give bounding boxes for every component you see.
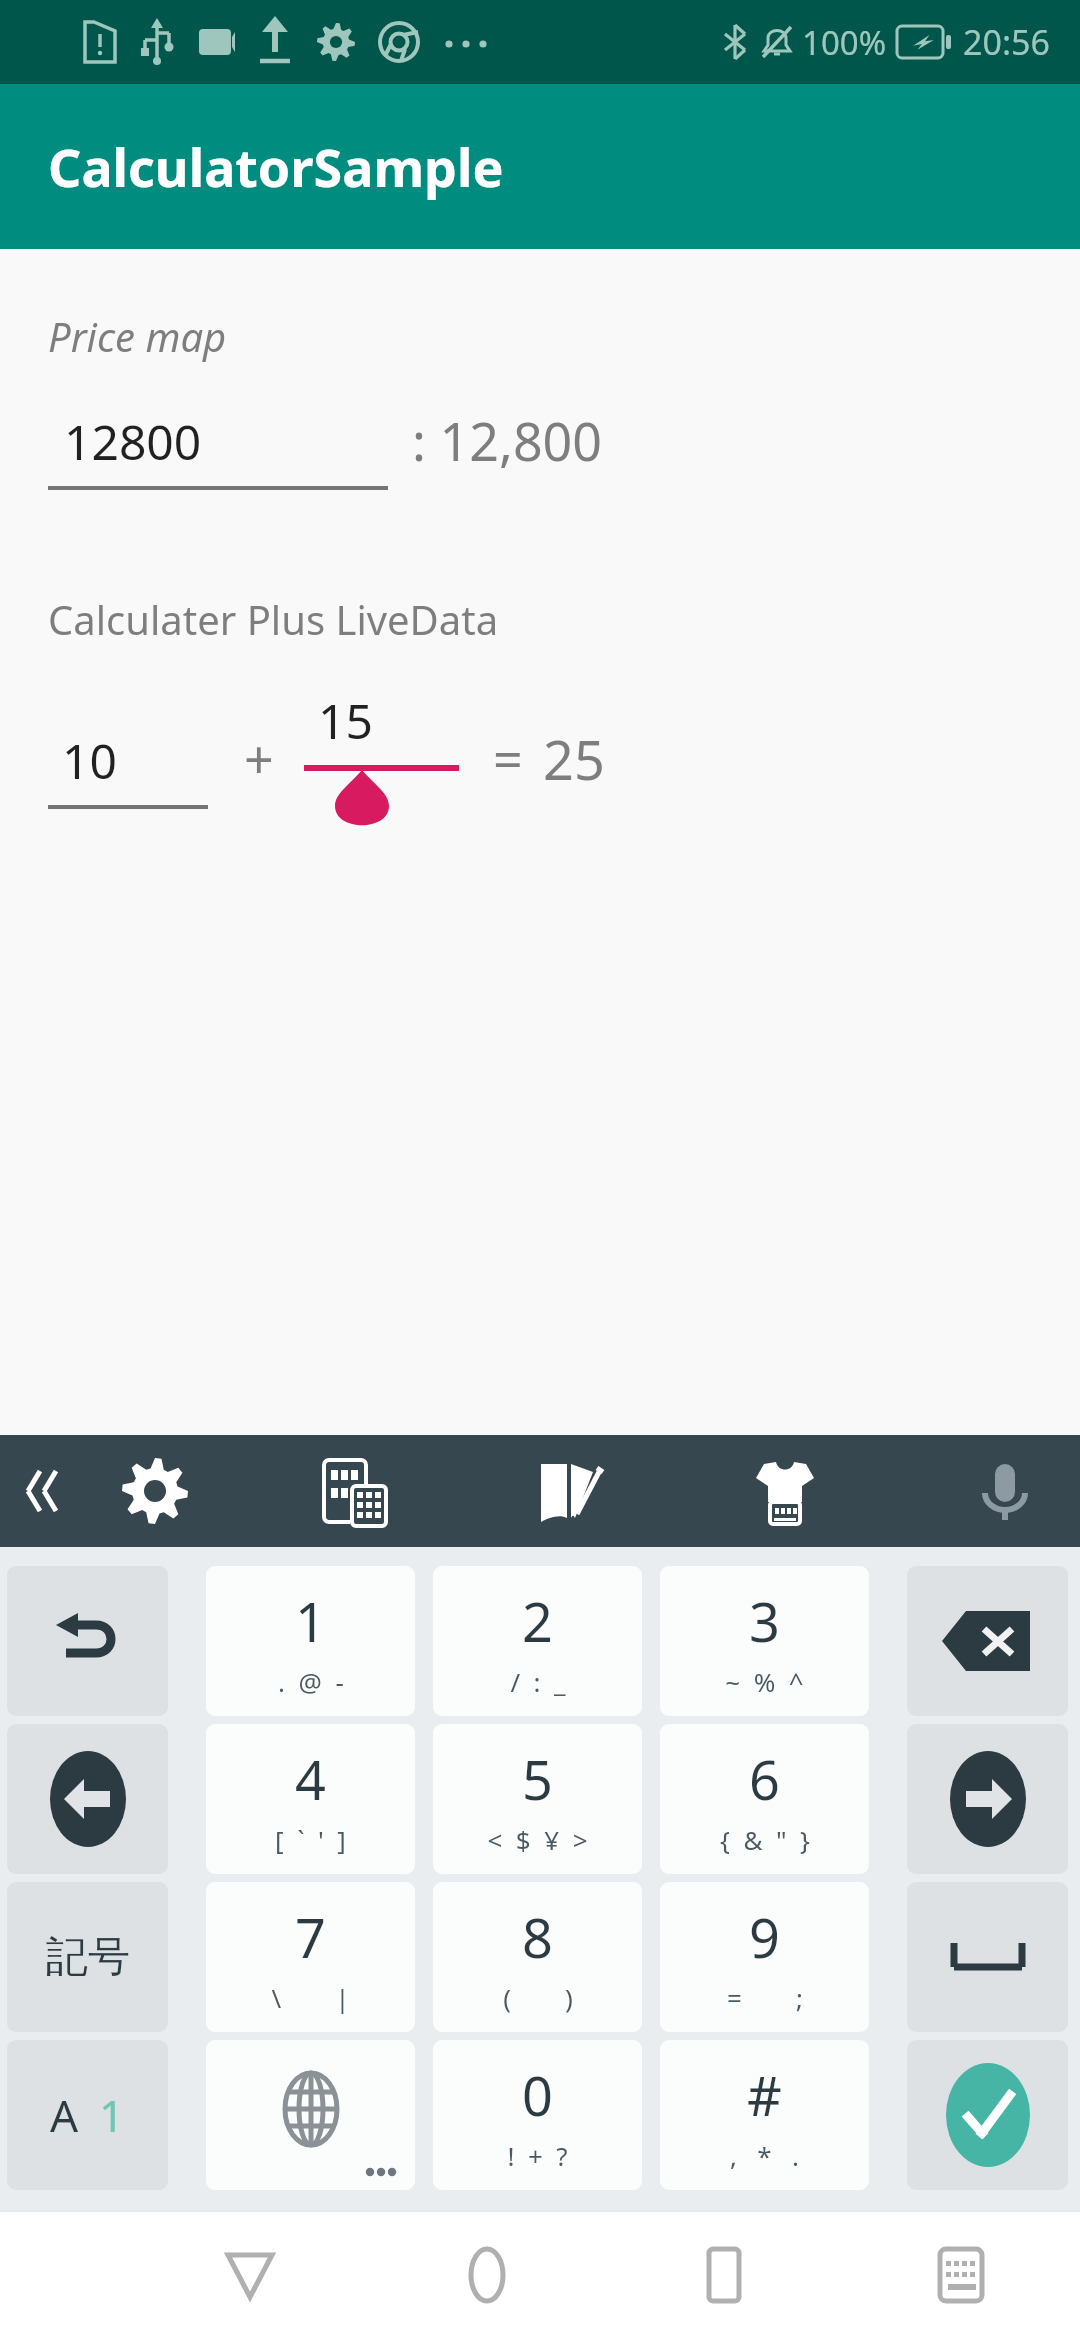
- staticText: Calculater Plus LiveData: [48, 592, 499, 646]
- button[interactable]: 7: [206, 1882, 415, 2032]
- button[interactable]: Theme: [715, 1435, 855, 1547]
- button[interactable]: Settings: [100, 1435, 210, 1547]
- staticText: 15: [318, 688, 373, 753]
- staticText: 100%: [802, 20, 887, 65]
- button[interactable]: 5: [433, 1724, 642, 1874]
- staticText: 12800: [64, 409, 202, 474]
- staticText: ~ % ^: [725, 1664, 804, 1699]
- staticText: 25: [543, 722, 605, 796]
- staticText: A: [50, 2085, 79, 2145]
- staticText: 9: [749, 1900, 780, 1974]
- button[interactable]: 3: [660, 1566, 869, 1716]
- staticText: =: [493, 723, 523, 794]
- staticText: : 12,800: [412, 405, 603, 476]
- button[interactable]: 10: [48, 728, 208, 809]
- button[interactable]: Voice input: [930, 1435, 1080, 1547]
- button[interactable]: 4: [206, 1724, 415, 1874]
- staticText: 3: [749, 1584, 780, 1658]
- button[interactable]: Calculator: [285, 1435, 425, 1547]
- button[interactable]: 6: [660, 1724, 869, 1874]
- staticText: [ ` ' ]: [275, 1822, 346, 1857]
- staticText: 20:56: [963, 19, 1050, 65]
- staticText: ( ): [503, 1980, 573, 2015]
- button[interactable]: Space: [907, 1882, 1068, 2032]
- staticText: +: [244, 723, 274, 794]
- staticText: ! + ?: [507, 2138, 568, 2173]
- staticText: 6: [749, 1742, 780, 1816]
- button[interactable]: 9: [660, 1882, 869, 2032]
- staticText: 記号: [46, 1931, 130, 1984]
- button[interactable]: Backspace: [907, 1566, 1068, 1716]
- staticText: { & " }: [720, 1822, 810, 1857]
- staticText: / : _: [510, 1664, 566, 1699]
- staticText: #: [747, 2058, 782, 2132]
- staticText: \ |: [271, 1980, 350, 2015]
- button[interactable]: Recent apps: [663, 2215, 783, 2335]
- button[interactable]: Back: [190, 2215, 310, 2335]
- staticText: 1: [295, 1584, 326, 1658]
- staticText: 4: [295, 1742, 326, 1816]
- button[interactable]: Enter: [907, 2040, 1068, 2190]
- staticText: 0: [522, 2058, 553, 2132]
- button[interactable]: Move cursor right: [907, 1724, 1068, 1874]
- staticText: < $ ¥ >: [487, 1822, 588, 1857]
- button[interactable]: Switch keyboard: [900, 2215, 1020, 2335]
- button[interactable]: 0: [433, 2040, 642, 2190]
- button[interactable]: Undo: [7, 1566, 168, 1716]
- staticText: Price map: [48, 309, 227, 363]
- button[interactable]: 15: [304, 688, 459, 848]
- button[interactable]: 2: [433, 1566, 642, 1716]
- button[interactable]: 12800: [48, 409, 388, 490]
- button[interactable]: Collapse keyboard: [0, 1435, 100, 1547]
- staticText: = ;: [727, 1980, 803, 2015]
- staticText: 5: [522, 1742, 553, 1816]
- button[interactable]: Move cursor left: [7, 1724, 168, 1874]
- button[interactable]: 1: [206, 1566, 415, 1716]
- button[interactable]: Dictionary: [500, 1435, 640, 1547]
- button[interactable]: Home: [427, 2215, 547, 2335]
- staticText: , * .: [730, 2138, 799, 2173]
- staticText: 1: [99, 2085, 125, 2145]
- button[interactable]: A: [7, 2040, 168, 2190]
- button[interactable]: Change input language: [206, 2040, 415, 2190]
- staticText: 8: [522, 1900, 553, 1974]
- staticText: CalculatorSample: [48, 131, 504, 202]
- button[interactable]: #: [660, 2040, 869, 2190]
- button[interactable]: 記号: [7, 1882, 168, 2032]
- button[interactable]: 8: [433, 1882, 642, 2032]
- staticText: 2: [522, 1584, 553, 1658]
- staticText: 10: [62, 728, 117, 793]
- staticText: . @ -: [278, 1664, 344, 1699]
- staticText: 7: [295, 1900, 326, 1974]
